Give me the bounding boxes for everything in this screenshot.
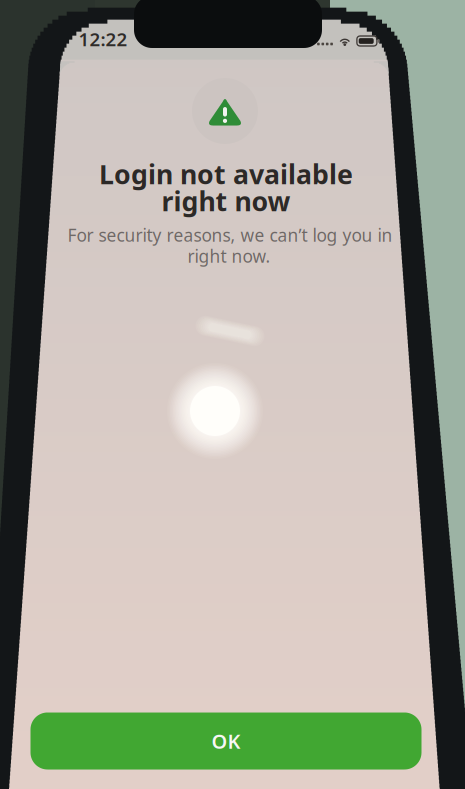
staticText: 12:22 (78, 27, 127, 51)
staticText: right now. (187, 244, 270, 267)
staticText: Login not available (99, 156, 353, 192)
button[interactable]: OK (30, 712, 421, 769)
staticText: For security reasons, we can’t log you i… (67, 223, 392, 246)
staticText: right now (161, 183, 290, 219)
staticText: OK (211, 728, 240, 754)
